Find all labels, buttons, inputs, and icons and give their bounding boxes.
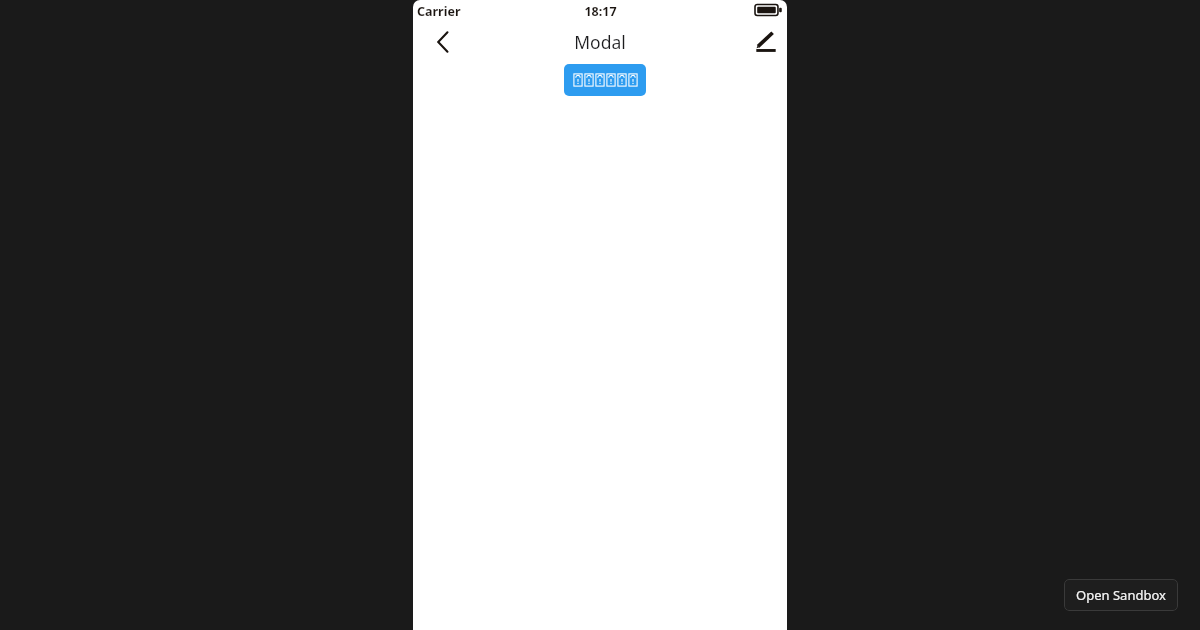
- button[interactable]: Back: [421, 24, 465, 60]
- staticText: Carrier: [417, 3, 461, 20]
- staticText: Open Sandbox: [1076, 586, 1166, 604]
- button[interactable]: Open Sandbox: [1064, 579, 1178, 611]
- staticText: Modal: [574, 30, 626, 54]
- staticText: 18:17: [584, 3, 617, 20]
- button[interactable]: Open modal: [564, 64, 646, 96]
- button[interactable]: Edit: [744, 24, 787, 60]
